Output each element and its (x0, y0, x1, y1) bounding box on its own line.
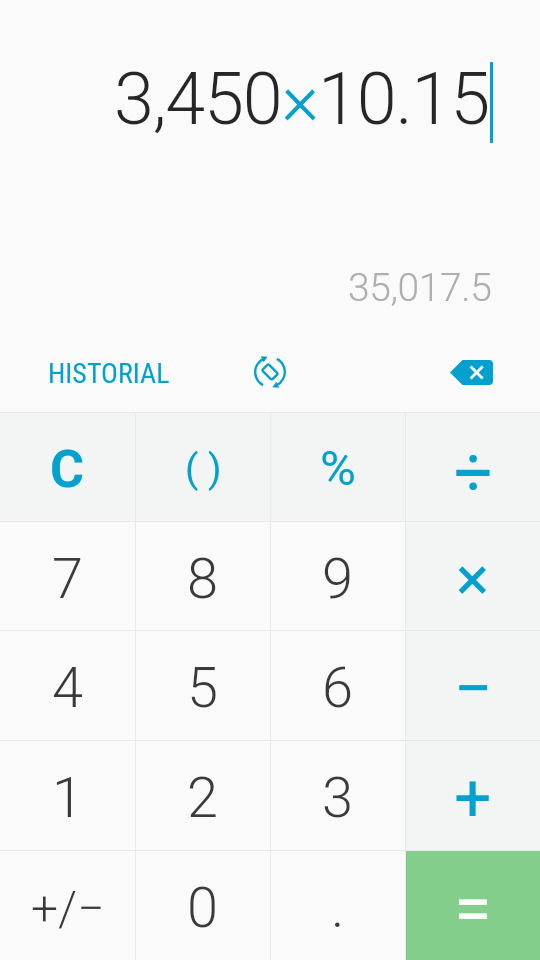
button[interactable]: 6 (271, 630, 405, 740)
staticText: 6 (322, 655, 354, 721)
button[interactable]: 4 (0, 630, 135, 740)
button[interactable]: ÷ (406, 412, 540, 521)
staticText: C (50, 439, 85, 500)
staticText: 9 (322, 546, 354, 612)
staticText: 35,017.5 (348, 265, 492, 311)
staticText: 4 (52, 655, 84, 721)
button[interactable]: ( ) (136, 412, 270, 521)
staticText: +/− (31, 880, 105, 936)
button[interactable]: 5 (136, 630, 270, 740)
staticText: 7 (52, 546, 84, 612)
button[interactable]: Backspace (444, 345, 498, 399)
staticText: 1 (52, 765, 84, 831)
staticText: ÷ (454, 433, 493, 513)
staticText: 2 (187, 765, 219, 831)
staticText: − (454, 649, 493, 729)
staticText: HISTORIAL (48, 357, 170, 390)
button[interactable]: +/− (0, 850, 135, 960)
staticText: ( ) (185, 446, 222, 492)
staticText: = (454, 869, 492, 949)
button[interactable]: 2 (136, 740, 270, 850)
staticText: 3 (322, 765, 354, 831)
staticText: . (331, 875, 345, 941)
staticText: 8 (187, 546, 219, 612)
button[interactable]: C (0, 412, 135, 521)
button[interactable]: + (406, 740, 540, 850)
staticText: + (454, 760, 492, 837)
staticText: 0 (187, 875, 219, 941)
button[interactable]: 9 (271, 521, 405, 630)
button[interactable]: . (271, 850, 405, 960)
button[interactable]: HISTORIAL (34, 345, 184, 402)
staticText: 3,450×10.15 (114, 57, 489, 141)
staticText: % (320, 440, 356, 497)
button[interactable]: 3 (271, 740, 405, 850)
button[interactable]: 1 (0, 740, 135, 850)
button[interactable]: 7 (0, 521, 135, 630)
button[interactable]: % (271, 412, 405, 521)
staticText: 5 (187, 655, 219, 721)
button[interactable]: 8 (136, 521, 270, 630)
staticText: × (456, 542, 490, 615)
button[interactable]: 0 (136, 850, 270, 960)
button[interactable]: × (406, 521, 540, 630)
button[interactable]: = (406, 850, 540, 960)
button[interactable]: Rotate screen (243, 345, 297, 399)
button[interactable]: − (406, 630, 540, 740)
